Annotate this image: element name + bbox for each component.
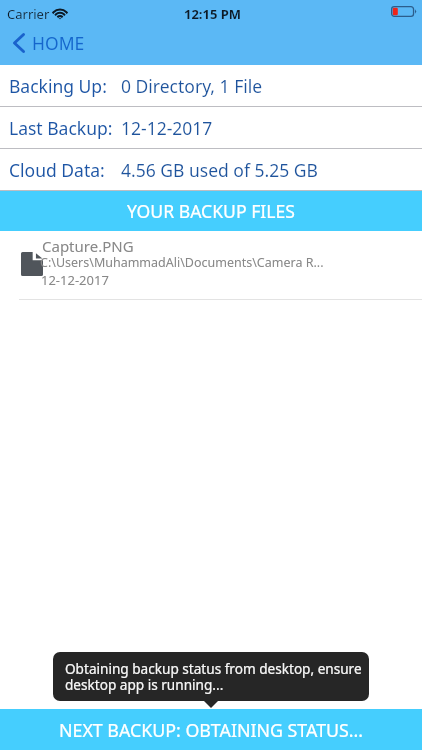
button[interactable]: File: [0, 231, 422, 299]
button[interactable]: Last Backup:: [0, 107, 422, 148]
button[interactable]: Backing Up:: [0, 65, 422, 106]
other: Wi-Fi: [52, 8, 68, 19]
staticText: 12:15 PM: [184, 5, 242, 23]
staticText: 0 Directory, 1 File: [121, 74, 263, 98]
staticText: C:\Users\MuhammadAli\Documents\Camera R.…: [40, 254, 324, 271]
staticText: Capture.PNG: [42, 236, 134, 256]
other: File: [21, 252, 43, 276]
staticText: 4.56 GB used of 5.25 GB: [121, 158, 318, 182]
other: Back: [13, 33, 25, 53]
staticText: 12-12-2017: [121, 116, 213, 140]
staticText: Carrier: [7, 5, 50, 23]
staticText: NEXT BACKUP: OBTAINING STATUS...: [59, 718, 364, 742]
staticText: Cloud Data:: [9, 158, 105, 182]
staticText: YOUR BACKUP FILES: [127, 199, 295, 223]
button[interactable]: Cloud Data:: [0, 149, 422, 190]
staticText: 12-12-2017: [41, 271, 109, 289]
staticText: Obtaining backup status from desktop, en…: [65, 659, 362, 694]
staticText: Last Backup:: [9, 116, 113, 140]
staticText: Backing Up:: [9, 74, 107, 98]
button[interactable]: Back: [0, 28, 99, 58]
other: Battery: [391, 6, 417, 17]
staticText: HOME: [32, 31, 85, 55]
button[interactable]: NEXT BACKUP: OBTAINING STATUS...: [0, 709, 422, 750]
